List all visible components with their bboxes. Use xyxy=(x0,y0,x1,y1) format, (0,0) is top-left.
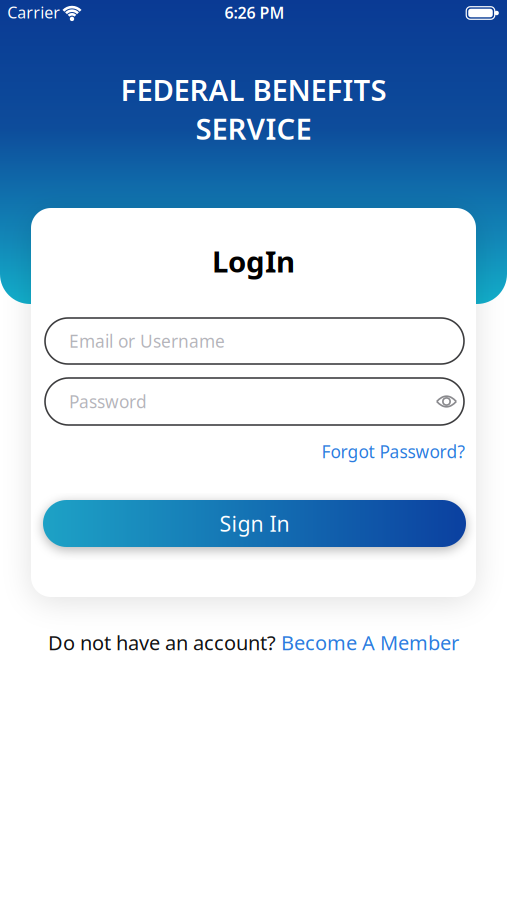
staticText: Do not have an account? xyxy=(48,629,281,656)
staticText: 6:26 PM xyxy=(224,2,284,23)
staticText: Become A Member xyxy=(281,629,459,656)
button[interactable]: Forgot Password? xyxy=(321,440,465,463)
button[interactable]: Password xyxy=(45,378,464,425)
staticText: Carrier xyxy=(7,2,60,23)
button[interactable]: Sign In xyxy=(43,500,466,547)
button[interactable]: Show password xyxy=(431,388,461,414)
button[interactable]: Become A Member xyxy=(281,629,459,656)
staticText: Password xyxy=(69,390,147,413)
staticText: FEDERAL BENEFITS xyxy=(120,70,386,109)
button[interactable]: Email or Username xyxy=(45,318,464,364)
staticText: LogIn xyxy=(212,241,295,280)
staticText: Forgot Password? xyxy=(321,440,465,463)
staticText: Sign In xyxy=(219,509,289,538)
staticText: Email or Username xyxy=(69,329,225,352)
staticText: SERVICE xyxy=(195,109,311,148)
